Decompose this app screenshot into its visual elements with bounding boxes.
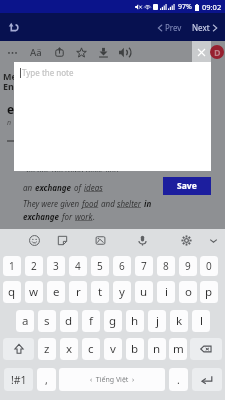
button[interactable]: u — [135, 281, 153, 303]
staticText: of — [74, 182, 84, 193]
staticText: work — [75, 211, 93, 222]
button[interactable]: 2 — [25, 256, 43, 276]
button[interactable]: Shift — [3, 338, 34, 360]
staticText: Save — [177, 180, 197, 192]
button[interactable]: o — [179, 281, 197, 303]
staticText: an — [23, 182, 35, 193]
button[interactable]: Next — [189, 17, 221, 38]
button[interactable]: 9 — [179, 256, 197, 276]
button[interactable]: l — [192, 310, 210, 332]
staticText: b — [131, 341, 139, 357]
button[interactable]: More options — [1, 41, 23, 63]
staticText: , — [45, 373, 48, 387]
button[interactable]: v — [104, 338, 122, 360]
button[interactable]: z — [38, 338, 56, 360]
button[interactable]: Dictionary app — [210, 45, 224, 59]
staticText: s — [44, 313, 50, 329]
button[interactable]: w — [25, 281, 43, 303]
button[interactable]: Stickers — [51, 229, 73, 251]
button[interactable]: 8 — [157, 256, 175, 276]
staticText: p — [205, 284, 213, 300]
button[interactable]: 5 — [91, 256, 109, 276]
button[interactable]: f — [82, 310, 100, 332]
button[interactable]: 6 — [113, 256, 131, 276]
button[interactable]: c — [82, 338, 100, 360]
button[interactable]: Type the note — [14, 62, 211, 171]
staticText: ideas — [84, 182, 103, 193]
button[interactable]: b — [126, 338, 144, 360]
button[interactable]: 7 — [135, 256, 153, 276]
staticText: 3 — [53, 259, 59, 273]
button[interactable]: x — [60, 338, 78, 360]
button[interactable]: h — [126, 310, 144, 332]
staticText: 1 — [9, 259, 15, 273]
button[interactable]: , — [37, 368, 56, 391]
button[interactable]: s — [38, 310, 56, 332]
staticText: k — [176, 313, 183, 329]
button[interactable]: e — [47, 281, 65, 303]
staticText: i — [165, 284, 168, 300]
staticText: f — [89, 313, 93, 329]
staticText: Aä — [30, 46, 42, 59]
staticText: n — [153, 341, 161, 357]
button[interactable]: Enter — [192, 368, 222, 391]
button[interactable]: 4 — [69, 256, 87, 276]
staticText: e — [7, 101, 15, 117]
button[interactable]: Pronounce — [113, 41, 135, 63]
button[interactable]: a — [16, 310, 34, 332]
button[interactable]: Share — [48, 41, 70, 63]
button[interactable]: g — [104, 310, 122, 332]
button[interactable]: d — [60, 310, 78, 332]
staticText: Type the note — [22, 67, 74, 78]
button[interactable]: Backspace — [190, 338, 222, 360]
staticText: v — [110, 341, 116, 357]
staticText: o — [185, 284, 192, 300]
staticText: 6 — [119, 259, 125, 273]
button[interactable]: ‹ Tiếng Việt › — [59, 368, 165, 391]
button[interactable]: Hide keyboard — [202, 229, 224, 251]
button[interactable]: Settings — [175, 229, 197, 251]
button[interactable]: t — [91, 281, 109, 303]
button[interactable]: !#1 — [4, 368, 33, 391]
button[interactable]: 0 — [200, 256, 218, 276]
staticText: food — [82, 198, 101, 209]
staticText: x — [66, 341, 73, 357]
button[interactable]: p — [200, 281, 218, 303]
staticText: Next — [192, 22, 210, 33]
button[interactable]: Font size — [25, 41, 47, 63]
staticText: ‹ Tiếng Việt › — [90, 375, 135, 385]
button[interactable]: Back — [2, 15, 26, 39]
button[interactable]: j — [148, 310, 166, 332]
button[interactable]: Download — [92, 41, 114, 63]
button[interactable]: k — [170, 310, 188, 332]
staticText: 8 — [163, 259, 169, 273]
staticText: z — [44, 341, 50, 357]
button[interactable]: y — [113, 281, 131, 303]
button[interactable]: r — [69, 281, 87, 303]
button[interactable]: Favorite — [70, 41, 92, 63]
button[interactable]: . — [169, 368, 188, 391]
staticText: he has the thing gives you something els… — [26, 171, 127, 172]
button[interactable]: i — [157, 281, 175, 303]
staticText: D — [214, 46, 221, 58]
button[interactable]: q — [3, 281, 21, 303]
button[interactable]: Emoji — [23, 229, 45, 251]
button[interactable]: n — [148, 338, 166, 360]
button[interactable]: m — [169, 338, 187, 360]
staticText: for — [62, 211, 75, 222]
staticText: in — [144, 198, 152, 209]
button[interactable]: Prev — [154, 17, 185, 38]
button[interactable]: Close — [192, 41, 211, 63]
staticText: u — [140, 284, 148, 300]
button[interactable]: 1 — [3, 256, 21, 276]
staticText: exchange — [23, 211, 62, 222]
staticText: and — [101, 198, 117, 209]
staticText: 7 — [141, 259, 147, 273]
button[interactable]: GIF — [89, 229, 111, 251]
button[interactable]: Voice input — [131, 229, 153, 251]
staticText: !#1 — [11, 373, 27, 387]
button[interactable]: 3 — [47, 256, 65, 276]
staticText: y — [119, 284, 125, 300]
staticText: n — [7, 118, 12, 128]
button[interactable]: Save — [163, 177, 211, 195]
